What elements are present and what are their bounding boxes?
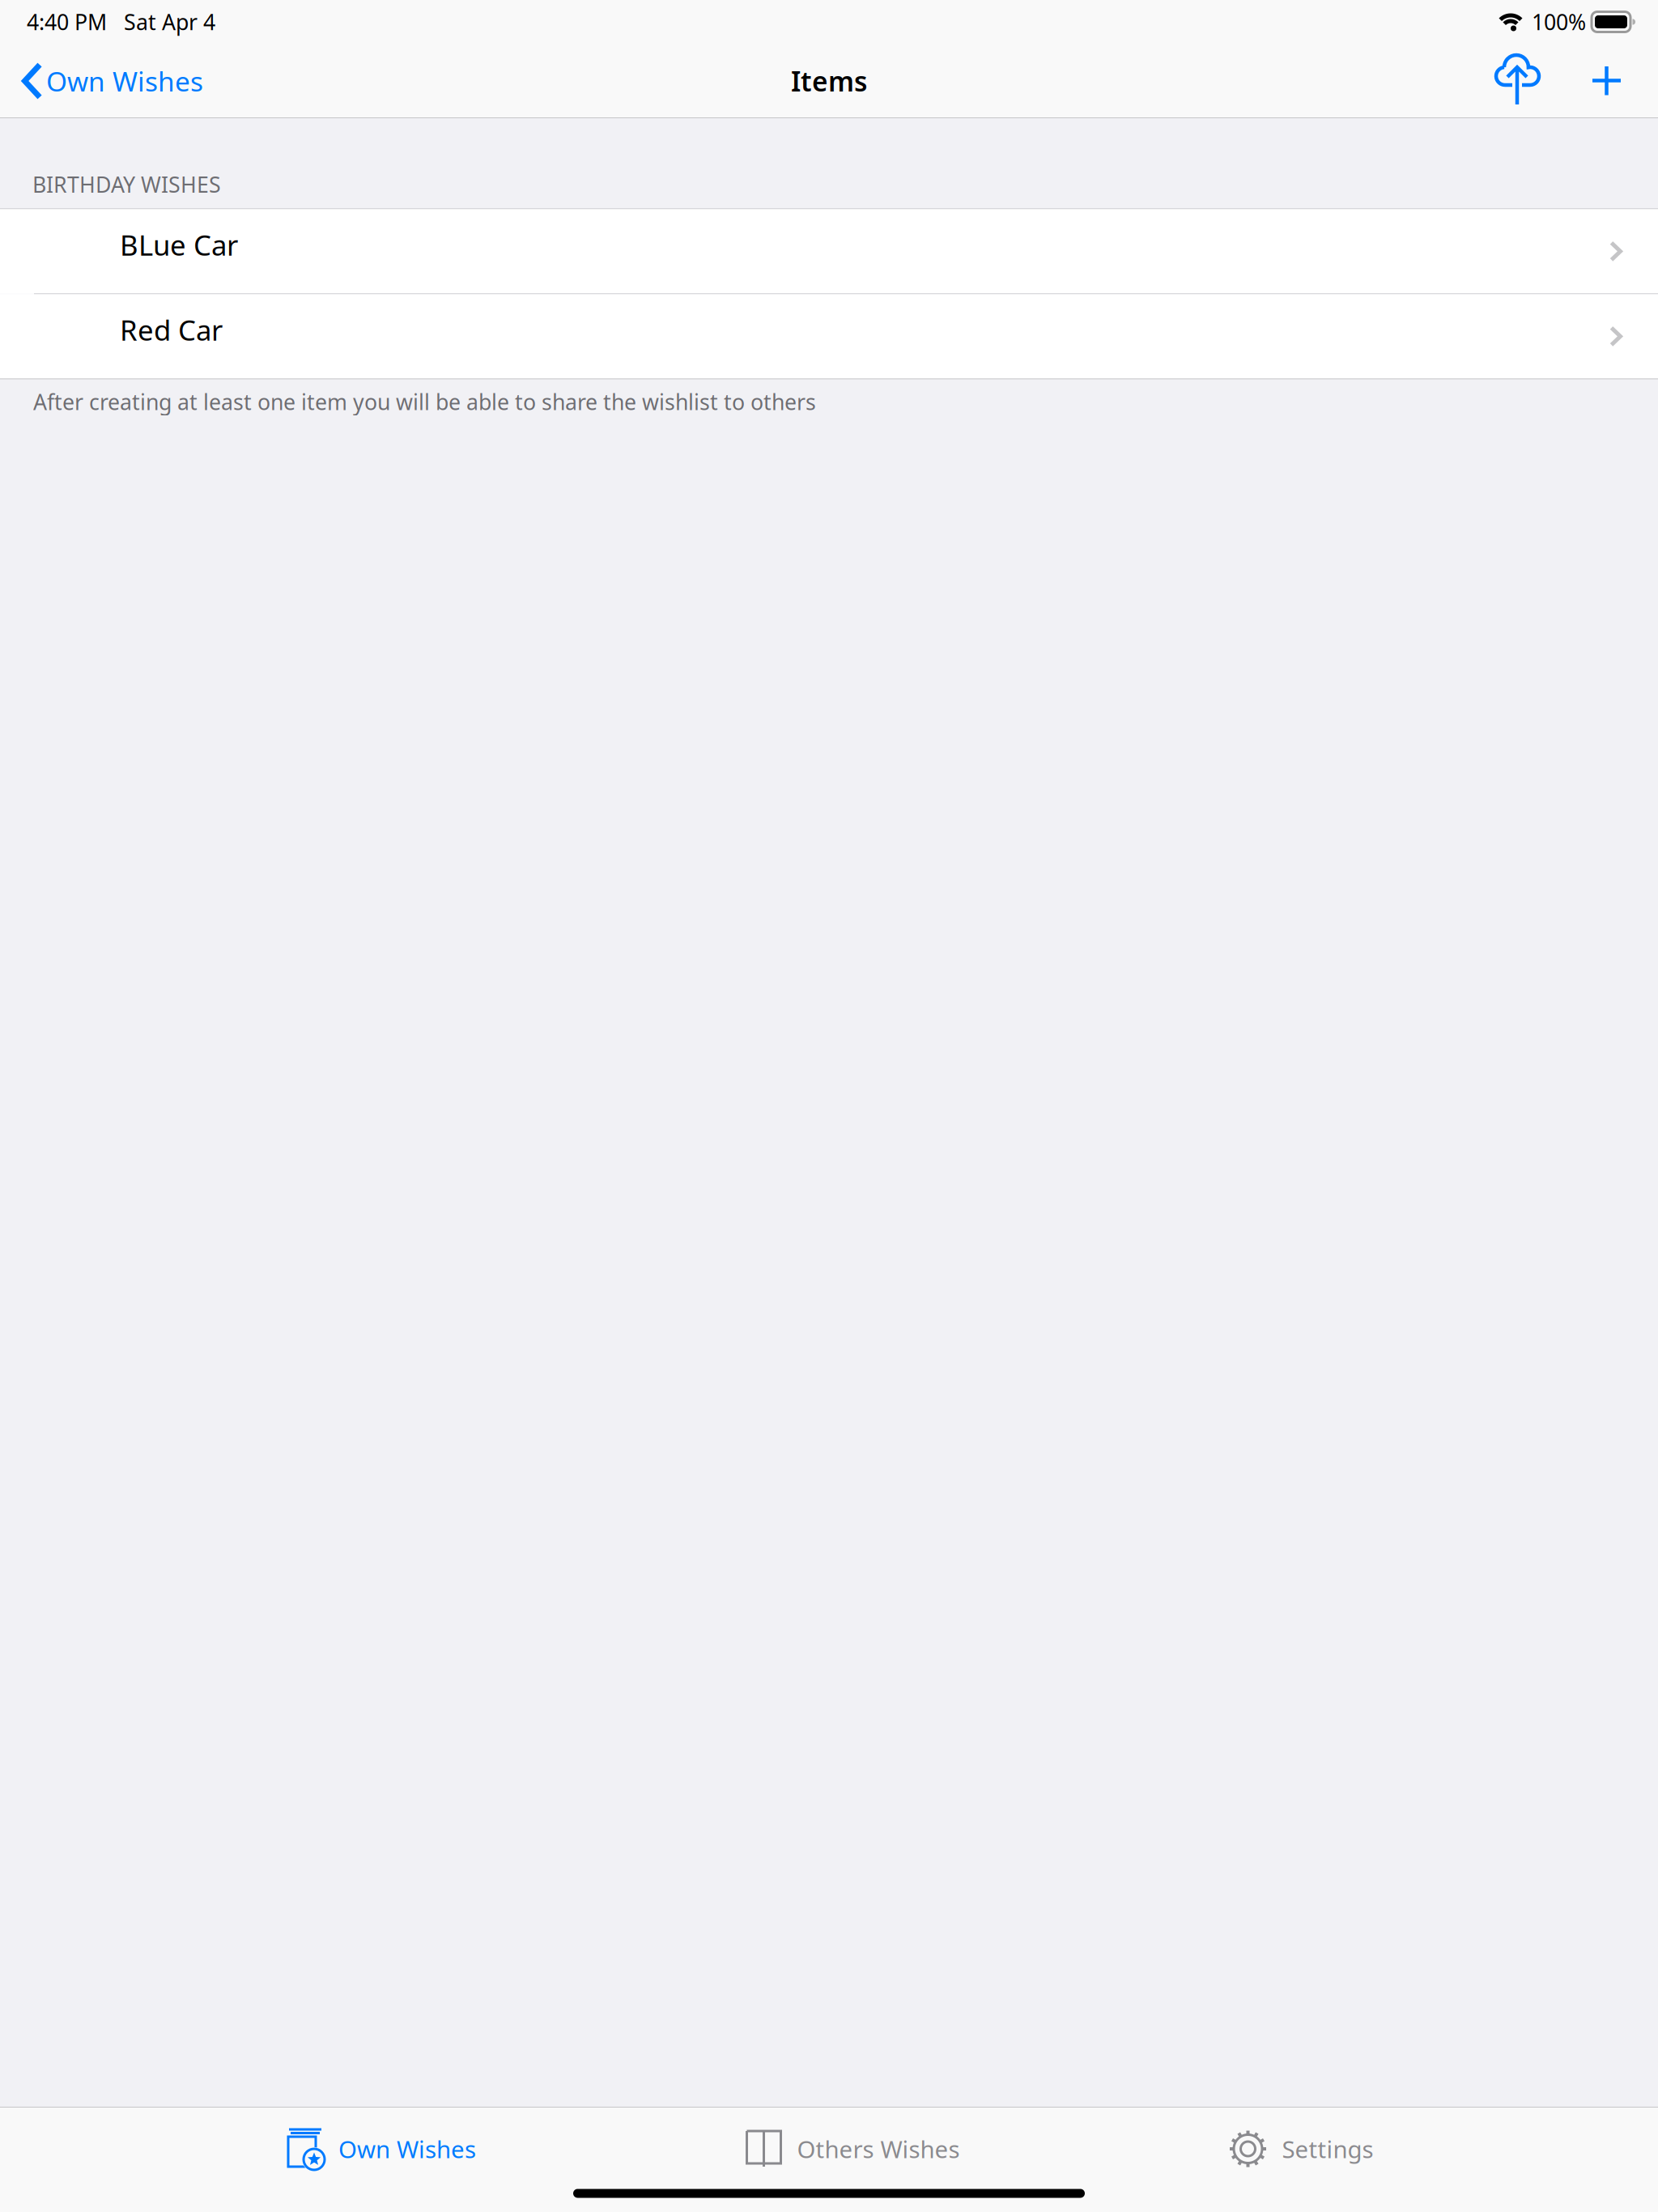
staticText: Settings: [1282, 2133, 1373, 2165]
button[interactable]: Own Wishes: [236, 2107, 527, 2184]
staticText: 100%: [1532, 8, 1586, 36]
button[interactable]: Add item: [1579, 65, 1634, 97]
staticText: Items: [791, 63, 867, 99]
button[interactable]: Others Wishes: [707, 2107, 998, 2184]
staticText: Red Car: [120, 311, 223, 348]
staticText: BIRTHDAY WISHES: [32, 170, 221, 199]
staticText: Own Wishes: [46, 63, 203, 99]
staticText: BLue Car: [120, 226, 238, 263]
button[interactable]: Share wishlist: [1486, 53, 1549, 109]
staticText: Others Wishes: [797, 2133, 960, 2165]
staticText: 4:40 PM: [27, 8, 107, 36]
staticText: After creating at least one item you wil…: [33, 387, 816, 416]
button[interactable]: Red Car: [0, 294, 1658, 378]
button[interactable]: Settings: [1155, 2107, 1447, 2184]
button[interactable]: BLue Car: [0, 209, 1658, 293]
staticText: Own Wishes: [338, 2133, 476, 2165]
button[interactable]: Own Wishes: [21, 53, 203, 108]
staticText: Sat Apr 4: [124, 8, 215, 36]
